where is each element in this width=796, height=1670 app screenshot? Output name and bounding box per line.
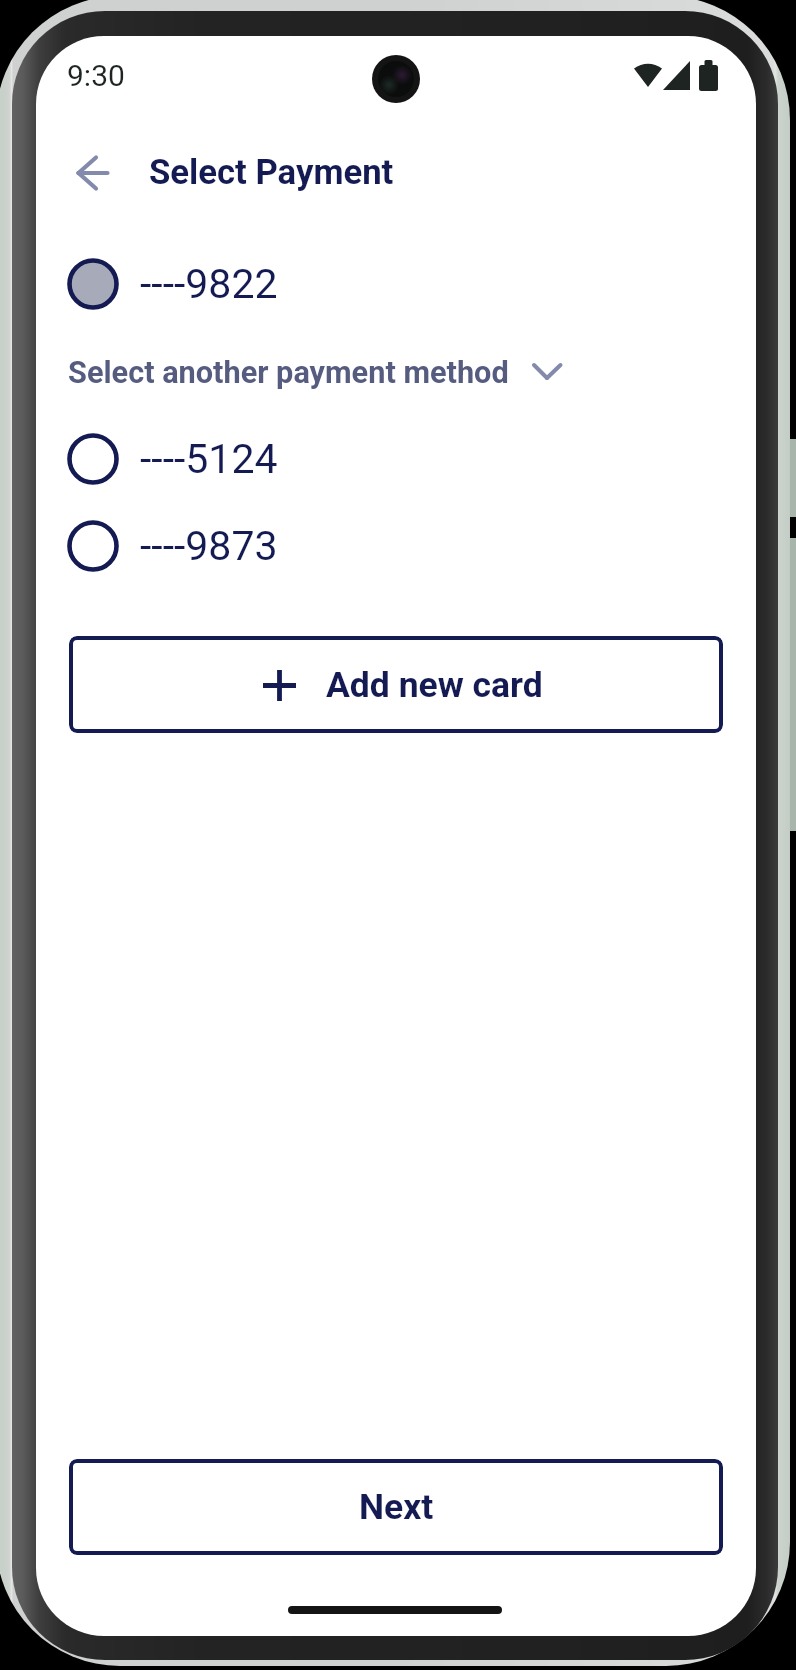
button[interactable]: Select another payment method xyxy=(64,345,604,401)
staticText: Add new card xyxy=(326,664,543,706)
button[interactable]: ----9873 xyxy=(56,510,496,582)
button[interactable]: Add new card xyxy=(69,636,723,733)
staticText: ----9873 xyxy=(140,522,278,570)
staticText: Select Payment xyxy=(149,152,394,193)
staticText: Select another payment method xyxy=(68,355,509,391)
button[interactable]: ----5124 xyxy=(56,423,496,495)
staticText: ----5124 xyxy=(140,435,278,483)
staticText: 9:30 xyxy=(67,58,125,93)
button[interactable]: ----9822 xyxy=(56,248,496,320)
staticText: Next xyxy=(359,1486,434,1528)
staticText: ----9822 xyxy=(140,260,278,308)
button[interactable]: Back xyxy=(61,137,133,209)
button[interactable]: Next xyxy=(69,1459,723,1555)
